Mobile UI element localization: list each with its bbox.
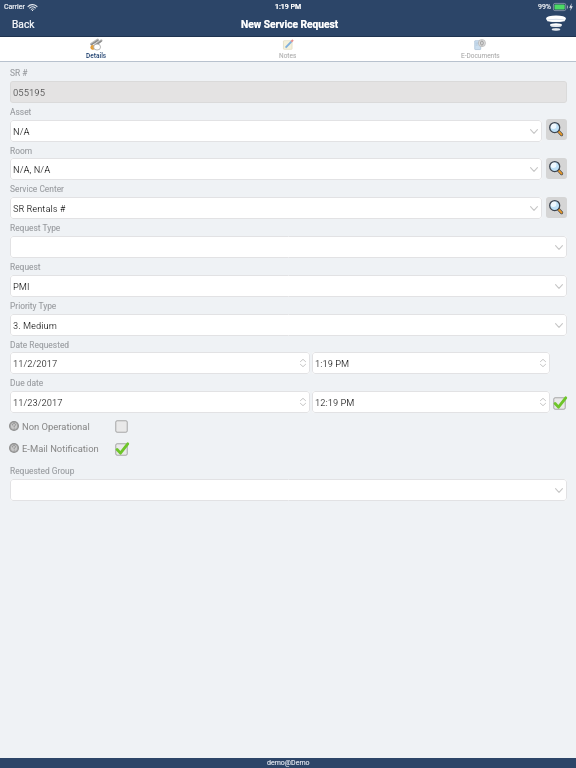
staticText: 11/23/2017	[13, 397, 63, 408]
staticText: Service Center	[10, 184, 64, 194]
button[interactable]	[10, 479, 567, 501]
staticText: E-Documents	[461, 52, 500, 60]
staticText: Date Requested	[10, 340, 70, 350]
staticText: Requested Group	[10, 466, 75, 476]
button[interactable]: Due date enabled	[553, 397, 566, 410]
button[interactable]: 3. Medium	[10, 314, 567, 336]
staticText: 12:19 PM	[315, 397, 355, 408]
button[interactable]: 1:19 PM	[312, 352, 550, 374]
button[interactable]: Details	[0, 37, 192, 61]
button[interactable]: Back	[0, 15, 45, 35]
staticText: Request	[10, 262, 41, 272]
staticText: Details	[86, 52, 107, 60]
staticText: New Service Request	[241, 19, 339, 31]
button[interactable]: N/A	[10, 120, 542, 142]
button[interactable]: Search	[546, 158, 567, 179]
staticText: 99%	[538, 3, 551, 11]
button[interactable]: Non Operational	[115, 420, 128, 433]
button[interactable]: Search	[546, 119, 567, 140]
staticText: Notes	[279, 52, 297, 60]
staticText: Asset	[10, 107, 32, 117]
staticText: demo@Demo	[267, 759, 310, 767]
button[interactable]: Non Operational	[8, 418, 91, 434]
button[interactable]: E-Mail Notification	[8, 440, 100, 456]
staticText: Back	[12, 19, 35, 31]
button[interactable]: Filter	[541, 11, 570, 34]
button[interactable]: N/A, N/A	[10, 158, 542, 180]
button[interactable]: 11/2/2017	[10, 352, 310, 374]
button[interactable]: E-Mail Notification	[115, 443, 128, 456]
staticText: 11/2/2017	[13, 358, 58, 369]
staticText: Due date	[10, 378, 44, 388]
button[interactable]: E-Documents	[384, 37, 576, 61]
button[interactable]: 11/23/2017	[10, 391, 310, 413]
staticText: E-Mail Notification	[22, 443, 99, 454]
staticText: Room	[10, 146, 33, 156]
staticText: PMI	[13, 281, 30, 292]
staticText: 1:19 PM	[315, 358, 350, 369]
staticText: Non Operational	[22, 421, 90, 432]
staticText: N/A	[13, 126, 30, 137]
staticText: 3. Medium	[13, 320, 57, 331]
button[interactable]: SR Rentals #	[10, 197, 542, 219]
staticText: SR Rentals #	[13, 203, 66, 214]
button[interactable]: PMI	[10, 275, 567, 297]
button[interactable]	[10, 236, 567, 258]
staticText: 055195	[13, 87, 46, 98]
button[interactable]: 12:19 PM	[312, 391, 550, 413]
staticText: Carrier	[4, 3, 25, 11]
staticText: 1:19 PM	[275, 3, 302, 11]
staticText: Priority Type	[10, 301, 57, 311]
staticText: N/A, N/A	[13, 164, 51, 175]
staticText: Request Type	[10, 223, 61, 233]
staticText: SR #	[10, 68, 28, 78]
button[interactable]: Search	[546, 197, 567, 218]
button[interactable]: Notes	[192, 37, 384, 61]
